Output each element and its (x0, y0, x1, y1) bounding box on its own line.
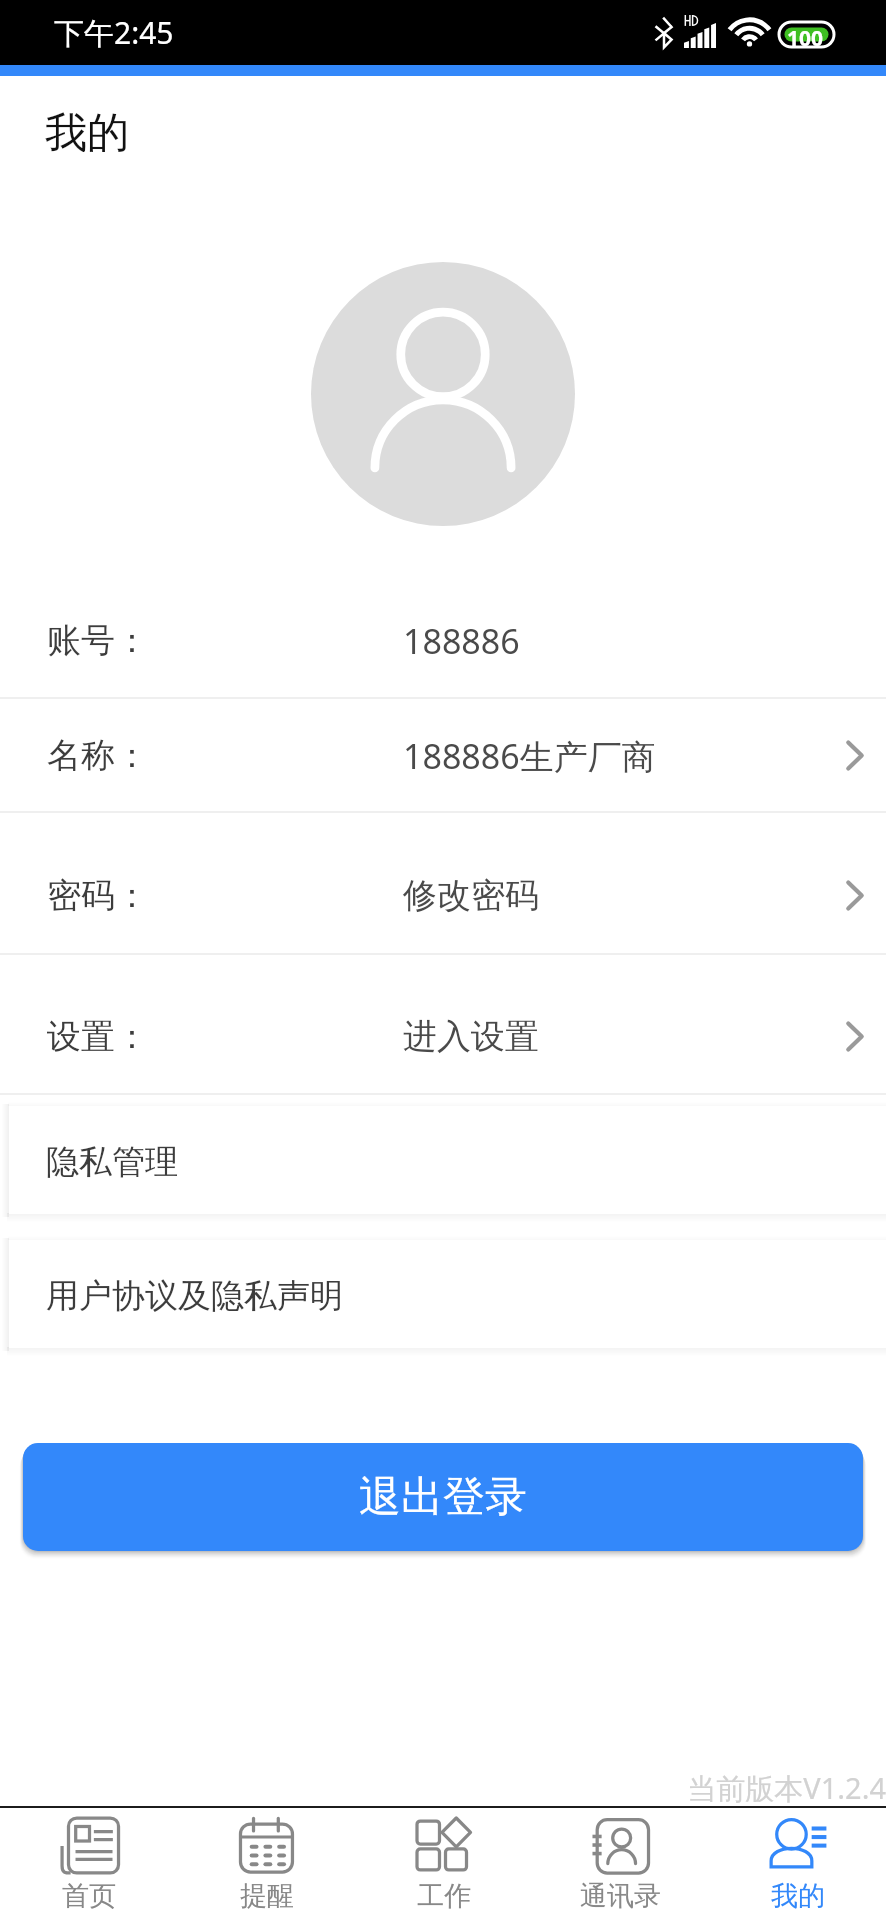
button[interactable]: 首页 (0, 1808, 178, 1920)
button[interactable]: 用户协议及隐私声明 (9, 1240, 886, 1348)
button[interactable]: 提醒 (178, 1808, 355, 1920)
button[interactable]: 退出登录 (23, 1443, 863, 1551)
staticText: 当前版本V1.2.4 (0, 1768, 886, 1808)
staticText: 密码： (47, 874, 149, 917)
staticText: 提醒 (240, 1879, 294, 1913)
staticText: 退出登录 (359, 1471, 527, 1524)
staticText: 工作 (417, 1879, 471, 1913)
button[interactable]: 名称： (0, 699, 886, 812)
staticText: 100 (787, 24, 847, 53)
staticText: 账号： (47, 619, 149, 662)
staticText: 修改密码 (403, 874, 539, 917)
button[interactable]: 工作 (355, 1808, 532, 1920)
staticText: 进入设置 (403, 1015, 539, 1058)
staticText: 188886生产厂商 (403, 733, 656, 779)
staticText: 下午2:45 (54, 12, 174, 53)
button[interactable]: 账号： (0, 584, 886, 697)
button[interactable]: Profile photo (311, 262, 575, 526)
staticText: 首页 (62, 1879, 116, 1913)
button[interactable]: 密码： (0, 839, 886, 952)
staticText: 隐私管理 (46, 1141, 178, 1183)
staticText: 188886 (403, 618, 520, 664)
staticText: 我的 (45, 107, 129, 160)
staticText: 通讯录 (580, 1879, 661, 1913)
button[interactable]: 我的 (709, 1808, 886, 1920)
staticText: 我的 (771, 1879, 825, 1913)
staticText: 用户协议及隐私声明 (46, 1275, 343, 1317)
button[interactable]: 通讯录 (532, 1808, 709, 1920)
staticText: 名称： (47, 734, 149, 777)
staticText: 设置： (47, 1015, 149, 1058)
button[interactable]: 隐私管理 (9, 1106, 886, 1214)
button[interactable]: 设置： (0, 980, 886, 1093)
